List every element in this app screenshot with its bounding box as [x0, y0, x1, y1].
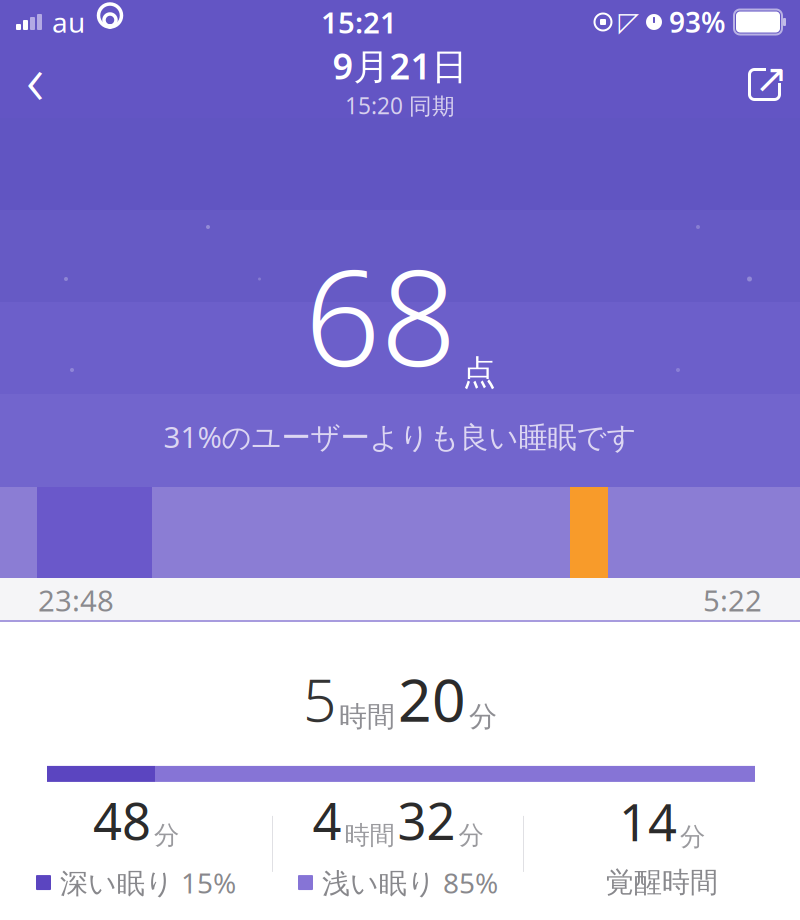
staticText: 分 [680, 821, 705, 852]
staticText: 浅い眠り 85% [322, 864, 498, 901]
staticText: 20 [398, 660, 466, 738]
staticText: 5:22 [703, 580, 762, 619]
staticText: 時間 [344, 820, 394, 851]
staticText: 分 [154, 820, 179, 851]
staticText: 15:20 同期 [345, 90, 455, 120]
staticText: 32 [397, 787, 455, 854]
staticText: 68 [304, 226, 456, 403]
staticText: ↗ [754, 56, 788, 101]
staticText: 5 [303, 660, 336, 738]
button[interactable]: Back [0, 44, 70, 118]
staticText: 15:21 [321, 2, 397, 41]
staticText: 48 [93, 787, 151, 854]
staticText: 23:48 [38, 580, 114, 619]
button[interactable]: Share [734, 44, 800, 118]
staticText: au [52, 3, 85, 41]
staticText: ‹ [26, 32, 44, 124]
staticText: 31%のユーザーよりも良い睡眠です [163, 417, 636, 456]
staticText: 深い眠り 15% [60, 864, 236, 901]
staticText: ◸ [618, 7, 639, 37]
staticText: 分 [458, 820, 483, 851]
staticText: 9月21日 [332, 41, 467, 89]
staticText: 点 [462, 352, 495, 393]
staticText: 分 [469, 699, 497, 734]
staticText: 4 [312, 787, 341, 854]
staticText: 14 [619, 788, 677, 855]
staticText: 93% [669, 3, 726, 41]
staticText: 時間 [339, 699, 395, 734]
staticText: 覚醒時間 [606, 865, 718, 900]
